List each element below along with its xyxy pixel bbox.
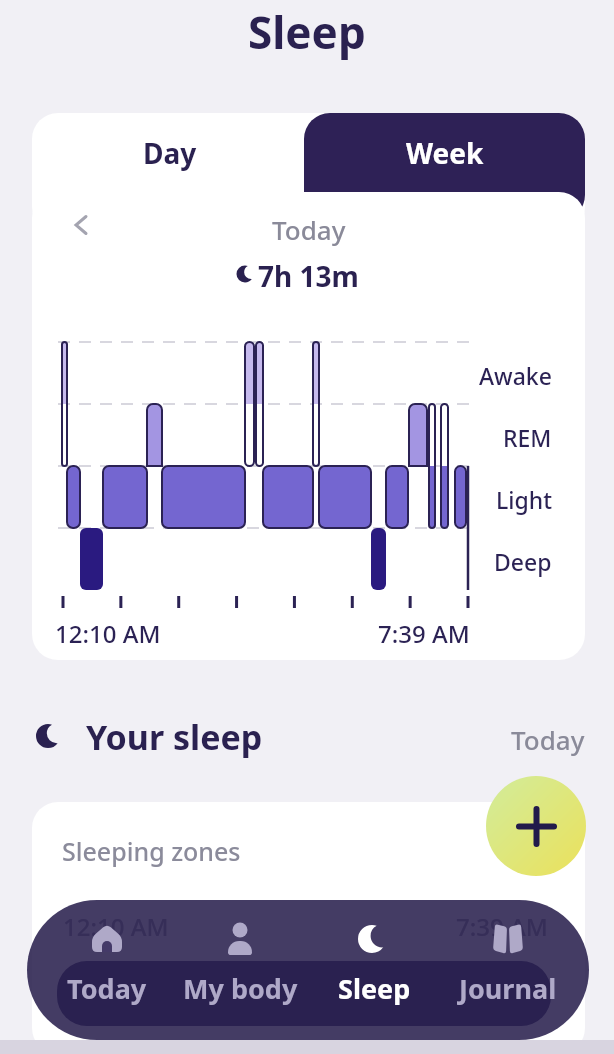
staticText: Day (143, 134, 197, 172)
button[interactable] (173, 921, 307, 957)
button[interactable] (40, 921, 173, 957)
button[interactable]: My body (173, 970, 307, 1007)
staticText: 7:39 AM (378, 617, 470, 650)
staticText: Sleeping zones (62, 834, 241, 868)
staticText: 7h 13m (258, 257, 359, 295)
staticText: My body (183, 970, 298, 1007)
button[interactable] (304, 113, 585, 221)
button[interactable] (307, 921, 441, 957)
staticText: Today (272, 212, 346, 247)
staticText: Light (496, 484, 552, 515)
button[interactable]: Journal (441, 970, 575, 1007)
staticText: Deep (494, 546, 552, 577)
staticText: REM (503, 422, 552, 453)
staticText: 12:10 AM (55, 617, 161, 650)
staticText: Awake (479, 360, 552, 391)
staticText: Today (511, 722, 585, 757)
staticText: 12:10 AM (63, 910, 169, 943)
staticText: Today (67, 970, 147, 1007)
button[interactable] (486, 776, 586, 876)
button[interactable] (74, 215, 88, 235)
staticText: Week (406, 134, 484, 172)
button[interactable]: Day (32, 113, 308, 193)
staticText: Journal (459, 970, 557, 1007)
button[interactable]: Today (40, 970, 173, 1007)
button[interactable]: Sleep (307, 970, 441, 1007)
staticText: 7:39 AM (456, 910, 548, 943)
staticText: Sleep (338, 970, 411, 1007)
staticText: Your sleep (86, 714, 263, 760)
staticText: Sleep (248, 2, 366, 62)
button[interactable] (441, 921, 575, 957)
